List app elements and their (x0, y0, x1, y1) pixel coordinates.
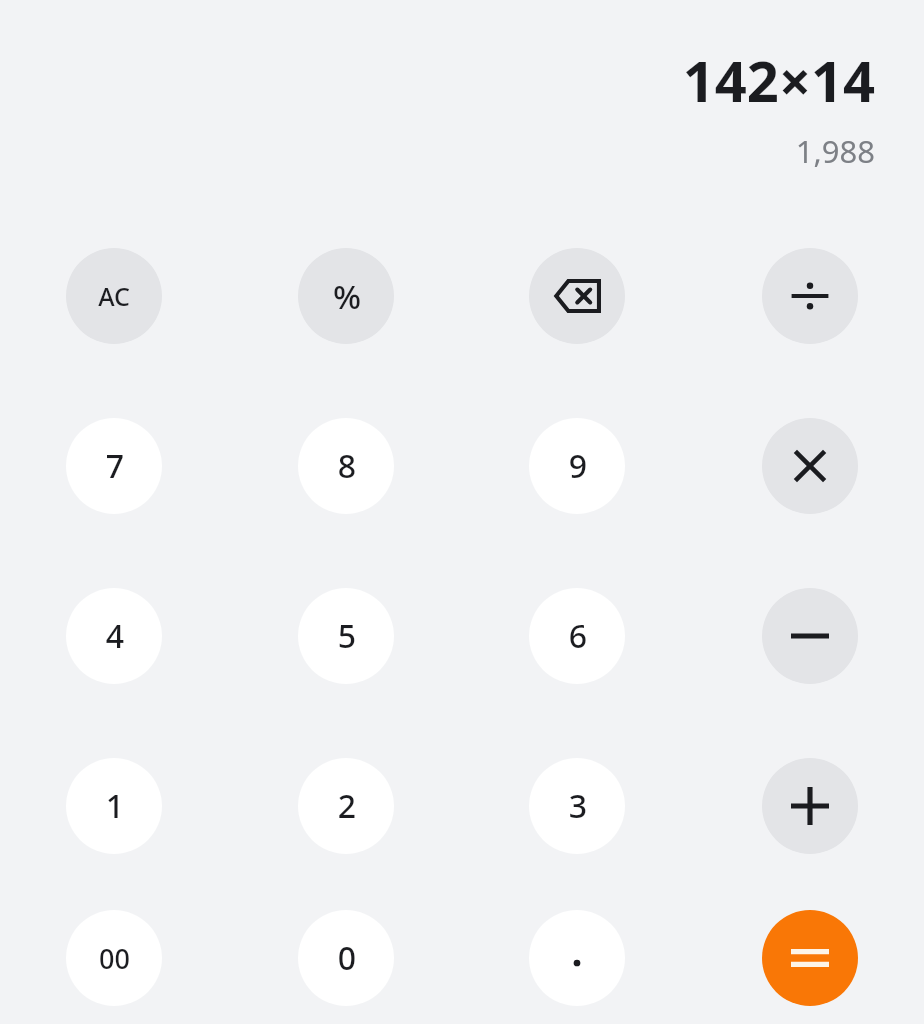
button[interactable]: 1 (66, 758, 162, 854)
staticText: % (332, 274, 361, 319)
staticText: AC (98, 279, 130, 313)
button[interactable]: 8 (298, 418, 394, 514)
button[interactable]: 5 (298, 588, 394, 684)
staticText: 0 (337, 936, 356, 980)
staticText: 4 (105, 614, 124, 658)
button[interactable]: 4 (66, 588, 162, 684)
staticText: 6 (568, 614, 587, 658)
button[interactable]: 6 (529, 588, 625, 684)
staticText: 142×14 (682, 42, 875, 118)
button[interactable]: % (298, 248, 394, 344)
button[interactable]: 00 (66, 910, 162, 1006)
button[interactable]: Backspace (529, 248, 625, 344)
button[interactable]: 3 (529, 758, 625, 854)
button[interactable]: 7 (66, 418, 162, 514)
button[interactable]: Multiply (762, 418, 858, 514)
button[interactable]: 2 (298, 758, 394, 854)
button[interactable]: 9 (529, 418, 625, 514)
button[interactable]: Minus (762, 588, 858, 684)
button[interactable]: Equals (762, 910, 858, 1006)
staticText: 1,988 (795, 130, 875, 172)
staticText: 8 (337, 444, 356, 488)
button[interactable]: Plus (762, 758, 858, 854)
button[interactable]: 0 (298, 910, 394, 1006)
staticText: 7 (105, 444, 124, 488)
staticText: 9 (568, 444, 587, 488)
button[interactable]: Divide (762, 248, 858, 344)
button[interactable]: Decimal point (529, 910, 625, 1006)
staticText: 5 (337, 614, 356, 658)
staticText: 1 (105, 784, 124, 828)
staticText: 3 (568, 784, 587, 828)
staticText: 2 (337, 784, 356, 828)
button[interactable]: AC (66, 248, 162, 344)
staticText: 00 (99, 940, 130, 977)
